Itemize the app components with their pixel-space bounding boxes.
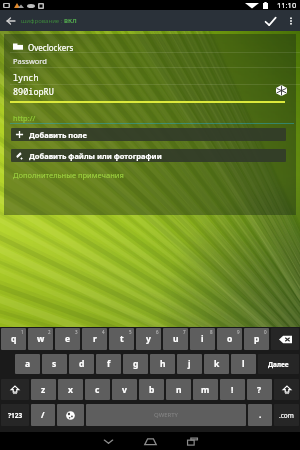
button[interactable]: g: [123, 354, 148, 374]
staticText: o: [227, 333, 233, 345]
button[interactable]: f: [96, 354, 121, 374]
button[interactable]: u: [163, 328, 188, 350]
button[interactable]: e: [55, 328, 80, 350]
staticText: Добавить файлы или фотографии: [29, 151, 162, 161]
button[interactable]: z: [31, 379, 56, 400]
button[interactable]: r: [82, 328, 107, 350]
staticText: e: [65, 333, 71, 345]
staticText: 8: [210, 329, 213, 335]
button[interactable]: v: [112, 379, 137, 400]
button[interactable]: x: [58, 379, 83, 400]
staticText: 1: [21, 329, 24, 335]
button[interactable]: Back: [93, 432, 123, 450]
button[interactable]: o: [217, 328, 242, 350]
button[interactable]: i: [190, 328, 215, 350]
staticText: n: [176, 384, 182, 396]
staticText: Password: [13, 56, 47, 66]
button[interactable]: l: [231, 354, 256, 374]
button[interactable]: Добавить поле: [11, 128, 286, 141]
button[interactable]: Symbols: [1, 404, 29, 426]
button[interactable]: .: [248, 404, 272, 426]
staticText: d: [79, 358, 85, 370]
button[interactable]: p: [244, 328, 269, 350]
staticText: s: [52, 358, 57, 370]
staticText: QWERTY: [154, 411, 179, 419]
staticText: y: [146, 333, 151, 345]
button[interactable]: a: [15, 354, 40, 374]
staticText: 4: [102, 329, 105, 335]
button[interactable]: Recent apps: [177, 432, 207, 450]
staticText: k: [214, 358, 220, 370]
button[interactable]: ?: [247, 379, 272, 400]
staticText: x: [68, 384, 73, 396]
staticText: .com: [279, 411, 294, 420]
staticText: ?: [257, 384, 262, 396]
button[interactable]: t: [109, 328, 134, 350]
staticText: шифрование :: [21, 17, 64, 25]
button[interactable]: !: [220, 379, 245, 400]
staticText: .: [259, 409, 262, 421]
button[interactable]: Change language: [57, 404, 84, 426]
staticText: m: [201, 384, 210, 396]
button[interactable]: c: [85, 379, 110, 400]
staticText: Далее: [268, 360, 289, 369]
staticText: c: [95, 384, 100, 396]
staticText: 3: [75, 329, 78, 335]
button[interactable]: h: [150, 354, 175, 374]
staticText: r: [93, 333, 97, 345]
staticText: f: [107, 358, 111, 370]
button[interactable]: dot com: [274, 404, 299, 426]
staticText: 0: [264, 329, 267, 335]
button[interactable]: b: [139, 379, 164, 400]
staticText: g: [133, 358, 139, 370]
staticText: ?123: [8, 411, 23, 420]
button[interactable]: Backspace: [271, 328, 299, 350]
staticText: p: [254, 333, 260, 345]
staticText: a: [25, 358, 31, 370]
staticText: l: [242, 358, 245, 370]
button[interactable]: n: [166, 379, 191, 400]
button[interactable]: q: [1, 328, 26, 350]
staticText: 7: [183, 329, 186, 335]
staticText: w: [37, 333, 45, 345]
staticText: u: [173, 333, 179, 345]
staticText: http://: [13, 113, 36, 123]
staticText: 2: [48, 329, 51, 335]
button[interactable]: y: [136, 328, 161, 350]
button[interactable]: s: [42, 354, 67, 374]
staticText: Oveclockers: [28, 42, 74, 51]
staticText: !: [231, 384, 234, 396]
button[interactable]: Добавить файлы или фотографии: [11, 149, 286, 162]
staticText: q: [11, 333, 17, 345]
staticText: lynch: [13, 72, 39, 84]
button[interactable]: w: [28, 328, 53, 350]
staticText: 890iopRU: [13, 86, 54, 98]
staticText: t: [120, 333, 124, 345]
button[interactable]: Home: [135, 432, 165, 450]
staticText: Добавить поле: [29, 130, 87, 140]
staticText: v: [122, 384, 127, 396]
staticText: z: [41, 384, 46, 396]
button[interactable]: More options: [282, 11, 300, 31]
button[interactable]: k: [204, 354, 229, 374]
button[interactable]: m: [193, 379, 218, 400]
button[interactable]: Shift: [274, 379, 299, 400]
button[interactable]: /: [31, 404, 55, 426]
button[interactable]: Back: [0, 11, 22, 31]
staticText: j: [188, 358, 191, 370]
staticText: 9: [237, 329, 240, 335]
staticText: i: [201, 333, 204, 345]
staticText: b: [149, 384, 155, 396]
staticText: Дополнительные примечания: [13, 170, 124, 180]
staticText: ВКЛ: [64, 17, 77, 25]
button[interactable]: d: [69, 354, 94, 374]
button[interactable]: j: [177, 354, 202, 374]
button[interactable]: Next: [258, 354, 299, 374]
staticText: h: [160, 358, 166, 370]
staticText: 6: [156, 329, 159, 335]
button[interactable]: Generate password: [275, 84, 288, 97]
button[interactable]: Save: [258, 11, 282, 31]
staticText: 5: [129, 329, 132, 335]
button[interactable]: Shift: [1, 379, 29, 400]
